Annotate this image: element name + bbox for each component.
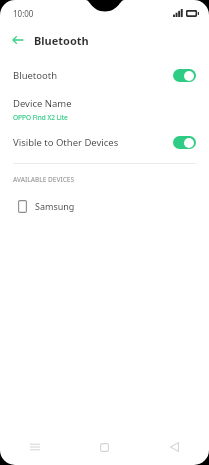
staticText: OPPO Find X2 Lite	[13, 113, 68, 122]
button[interactable]: Recent apps	[0, 433, 69, 461]
staticText: Device Name	[13, 97, 72, 110]
staticText: Bluetooth	[34, 33, 89, 48]
button[interactable]: Bluetooth	[0, 60, 209, 90]
button[interactable]: Visible to Other Devices	[0, 128, 209, 156]
button[interactable]: Samsung	[0, 193, 209, 219]
button[interactable]: Visible to Other Devices toggle	[173, 136, 196, 149]
button[interactable]: Home	[69, 433, 139, 461]
staticText: Samsung	[35, 200, 75, 212]
button[interactable]: Device Name	[0, 90, 209, 128]
button[interactable]: Back	[139, 433, 209, 461]
button[interactable]: Bluetooth toggle	[173, 69, 196, 82]
staticText: 10:00	[13, 8, 34, 19]
staticText: Bluetooth	[13, 69, 173, 82]
button[interactable]: Back	[8, 30, 28, 50]
staticText: Visible to Other Devices	[13, 136, 173, 149]
staticText: AVAILABLE DEVICES	[13, 175, 75, 184]
